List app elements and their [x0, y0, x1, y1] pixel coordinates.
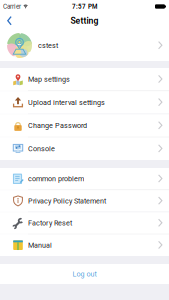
button[interactable]: Manual [0, 234, 169, 256]
button[interactable]: Upload interval settings [0, 91, 169, 114]
staticText: Manual [28, 241, 52, 249]
staticText: cstest [38, 41, 58, 50]
staticText: 7:57 PM [72, 3, 97, 10]
staticText: Console [28, 144, 55, 153]
staticText: Change Password [28, 121, 87, 130]
staticText: Map settings [28, 75, 70, 83]
staticText: Factory Reset [28, 219, 72, 227]
button[interactable]: Factory Reset [0, 212, 169, 234]
button[interactable]: Map settings [0, 68, 169, 91]
staticText: Log out [72, 270, 96, 278]
button[interactable]: cstest [0, 30, 169, 61]
staticText: Upload interval settings [28, 98, 105, 107]
button[interactable]: Privacy Policy Statement [0, 190, 169, 212]
button[interactable]: Log out [0, 264, 169, 284]
staticText: common problem [28, 175, 84, 183]
button[interactable]: Change Password [0, 114, 169, 137]
staticText: Carrier [3, 3, 21, 10]
button[interactable]: Console [0, 137, 169, 160]
staticText: Privacy Policy Statement [28, 197, 106, 205]
button[interactable]: Back [0, 14, 18, 29]
button[interactable]: common problem [0, 168, 169, 190]
staticText: Setting [70, 16, 98, 26]
